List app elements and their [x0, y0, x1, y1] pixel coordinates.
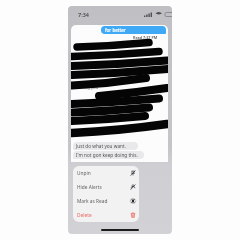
staticText: Delete — [77, 212, 92, 219]
button[interactable]: Unpin — [73, 166, 139, 180]
other: Mark as Read — [130, 198, 136, 204]
button[interactable]: Delete — [73, 208, 139, 222]
staticText: Just do what you want. — [76, 143, 126, 149]
other: Unpin — [130, 170, 136, 176]
staticText: 7:34 — [78, 11, 89, 18]
staticText: for better — [105, 27, 126, 33]
other: Delete — [130, 212, 136, 218]
staticText: Hide Alerts — [77, 184, 102, 191]
staticText: I'm not gon keep doing this. — [76, 152, 138, 158]
staticText: Unpin — [77, 170, 91, 177]
button[interactable]: I'm not gon keep doing this. — [73, 151, 144, 159]
other: Hide Alerts — [130, 184, 136, 190]
staticText: asking you — [77, 85, 99, 91]
staticText: Mark as Read — [77, 198, 108, 205]
button[interactable]: Hide Alerts — [73, 180, 139, 194]
button[interactable]: for better — [101, 26, 166, 34]
staticText: Read 7:37 PM — [133, 35, 158, 40]
button[interactable]: Just do what you want. — [73, 142, 138, 150]
button[interactable]: Mark as Read — [73, 194, 139, 208]
